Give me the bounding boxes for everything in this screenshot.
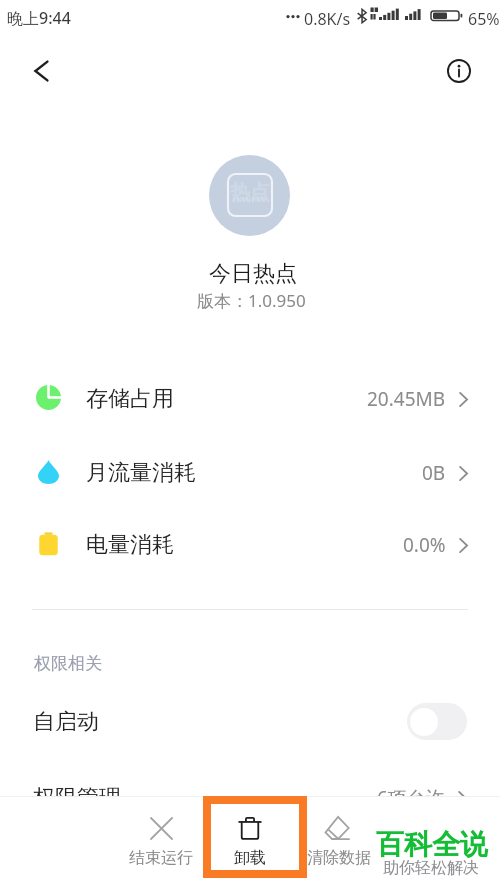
staticText: 卸载 (234, 848, 266, 868)
button[interactable]: 清除数据 (287, 816, 387, 868)
staticText: 今日热点 (209, 260, 297, 288)
staticText: 权限相关 (34, 653, 102, 674)
staticText: 清除数据 (307, 848, 371, 868)
staticText: 热点 (230, 180, 270, 205)
button[interactable]: Info (439, 51, 479, 91)
button[interactable]: 月流量消耗 (0, 450, 500, 496)
staticText: 0.0% (403, 532, 446, 558)
staticText: 存储占用 (86, 385, 174, 413)
button[interactable]: 结束运行 (111, 816, 211, 868)
button[interactable]: 卸载 (200, 816, 300, 868)
button[interactable]: 自启动 (0, 695, 500, 748)
staticText: 20.45MB (367, 386, 446, 412)
staticText: 自启动 (33, 708, 99, 736)
staticText: 0.8K/s (304, 8, 351, 30)
button[interactable]: 存储占用 (0, 376, 500, 422)
staticText: 月流量消耗 (86, 459, 196, 487)
staticText: 权限管理 (33, 784, 121, 812)
staticText: 结束运行 (129, 848, 193, 868)
staticText: 晚上9:44 (7, 7, 71, 29)
staticText: 百科全说 (376, 827, 488, 862)
staticText: 65% (468, 8, 500, 30)
staticText: 版本：1.0.950 (197, 289, 306, 312)
staticText: 电量消耗 (86, 531, 174, 559)
staticText: 0B (422, 460, 446, 486)
staticText: 助你轻松解决 (383, 858, 479, 878)
button[interactable]: Back (23, 51, 63, 91)
button[interactable]: 电量消耗 (0, 522, 500, 568)
staticText: 6项允许 (377, 785, 445, 811)
button[interactable]: 权限管理 (0, 773, 500, 823)
